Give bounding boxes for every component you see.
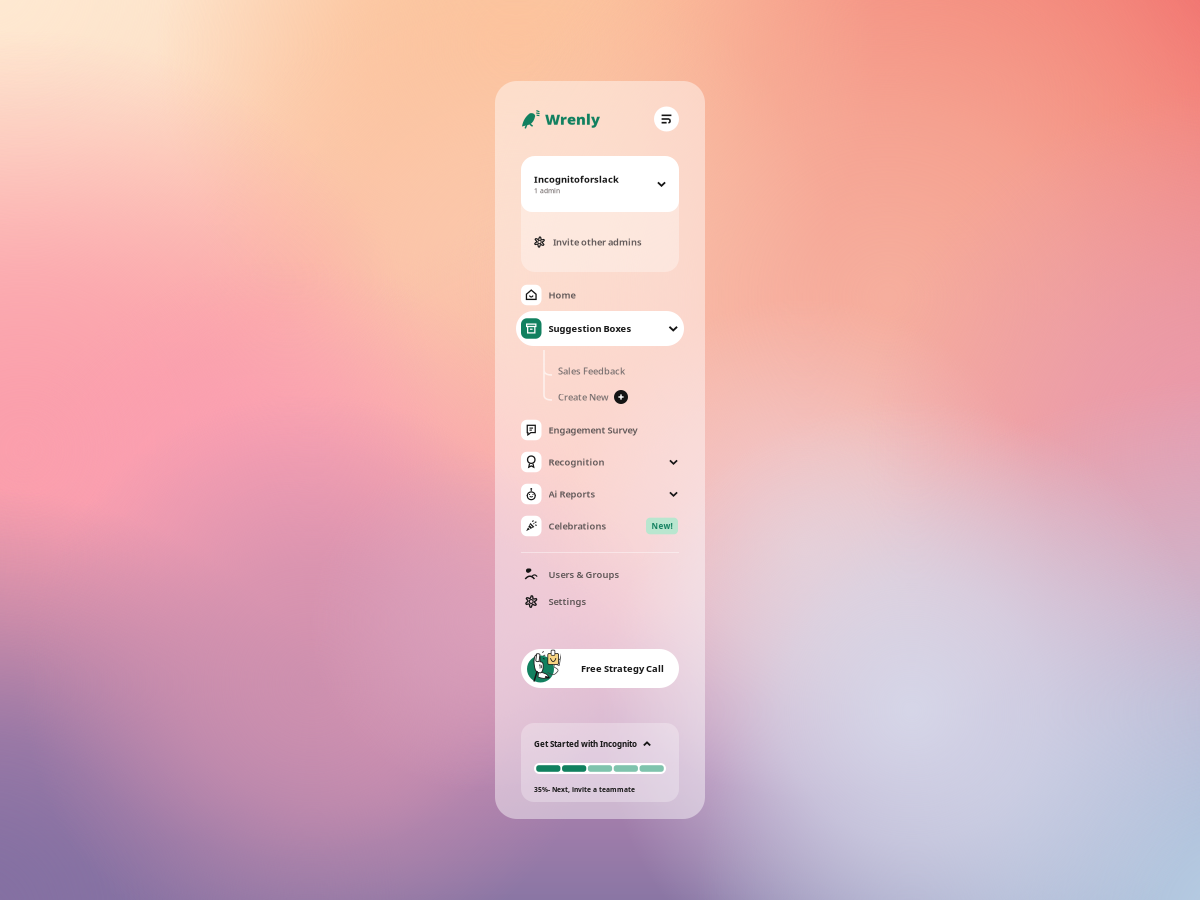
button[interactable]: Free Strategy Call	[521, 649, 679, 688]
staticText: Incognitoforslack	[534, 173, 619, 185]
staticText: 35%- Next, invite a teammate	[534, 785, 635, 794]
staticText: Get Started with Incognito	[534, 739, 637, 749]
button[interactable]: Celebrations	[516, 510, 684, 542]
button[interactable]: Engagement Survey	[516, 414, 684, 446]
staticText: Free Strategy Call	[581, 662, 664, 675]
staticText: Recognition	[548, 456, 604, 468]
button[interactable]: Recognition	[516, 446, 684, 478]
button[interactable]: Settings	[516, 588, 684, 615]
staticText: Home	[548, 289, 575, 301]
button[interactable]: Invite other admins	[521, 212, 679, 272]
staticText: Sales Feedback	[558, 365, 625, 377]
staticText: Engagement Survey	[548, 424, 637, 436]
staticText: Ai Reports	[548, 488, 595, 500]
button[interactable]: Collapse sidebar	[654, 106, 679, 131]
button[interactable]: Users & Groups	[516, 561, 684, 588]
staticText: Settings	[548, 595, 586, 608]
button[interactable]: Incognitoforslack	[521, 156, 679, 212]
staticText: 1 admin	[534, 186, 560, 195]
staticText: Invite other admins	[553, 236, 642, 248]
button[interactable]: Get Started with Incognito	[534, 737, 666, 751]
button[interactable]: Suggestion Boxes	[516, 311, 684, 346]
staticText: Celebrations	[548, 520, 606, 532]
button[interactable]: Ai Reports	[516, 478, 684, 510]
button[interactable]: Home	[516, 279, 684, 311]
button[interactable]: Sales Feedback	[516, 358, 684, 384]
staticText: Suggestion Boxes	[548, 322, 631, 335]
staticText: Create New	[558, 391, 609, 403]
staticText: Wrenly	[545, 109, 600, 129]
staticText: New!	[651, 521, 672, 531]
button[interactable]: Create New	[516, 384, 684, 410]
staticText: Users & Groups	[548, 568, 619, 581]
